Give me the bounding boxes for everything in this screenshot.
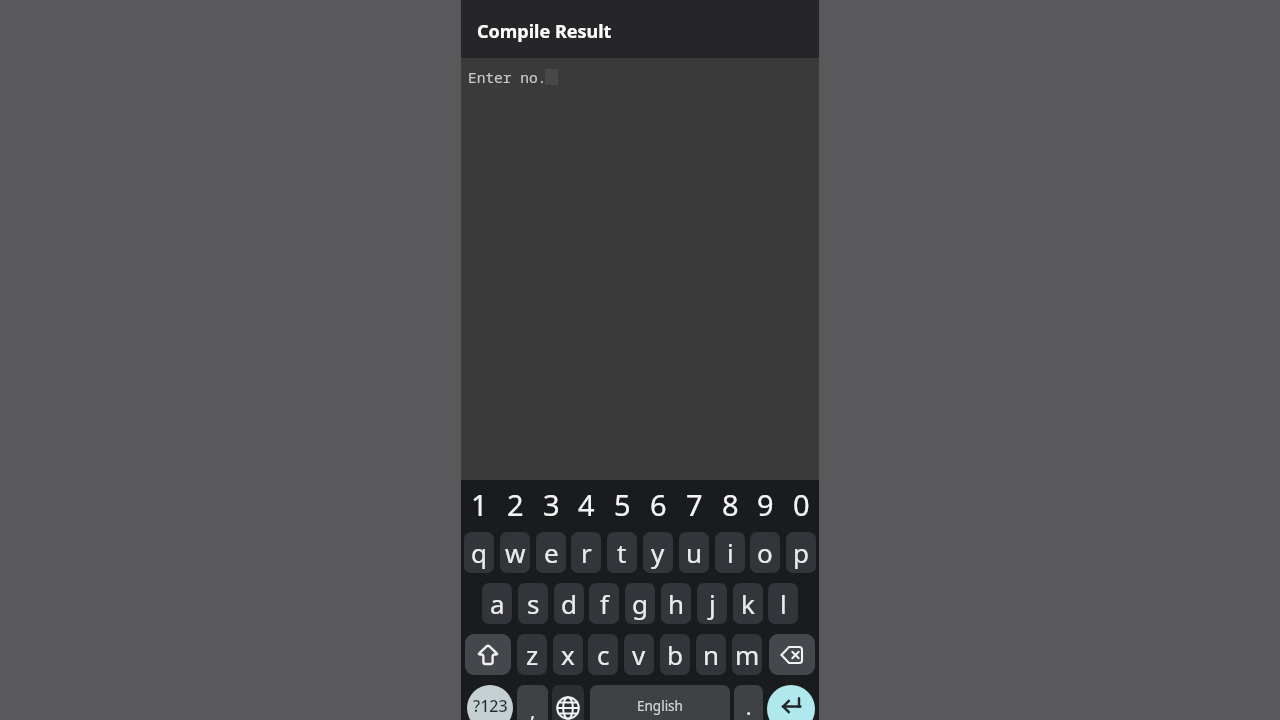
button[interactable]: f [589,583,619,624]
staticText: g [632,586,648,621]
button[interactable]: s [518,583,548,624]
button[interactable]: p [786,532,816,573]
button[interactable]: g [625,583,655,624]
staticText: r [581,535,592,570]
button[interactable]: r [571,532,601,573]
staticText: q [471,535,487,570]
staticText: p [793,535,809,570]
staticText: i [727,535,734,570]
button[interactable]: i [715,532,745,573]
button[interactable]: 7 [676,479,712,529]
button[interactable]: Compile Result [461,0,819,58]
staticText: s [527,586,540,621]
staticText: m [735,637,760,672]
button[interactable]: 3 [533,479,569,529]
button[interactable]: o [750,532,780,573]
button[interactable]: 6 [640,479,676,529]
button[interactable]: 8 [712,479,748,529]
staticText: 5 [614,485,631,524]
staticText: h [668,586,685,621]
button[interactable]: q [464,532,494,573]
button[interactable]: n [696,634,726,675]
staticText: 6 [650,485,667,524]
button[interactable]: 1 [461,479,497,529]
button[interactable]: ?123 [467,685,513,720]
button[interactable]: 2 [497,479,533,529]
button[interactable]: b [660,634,690,675]
button[interactable]: y [643,532,673,573]
staticText: t [617,535,627,570]
button[interactable]: l [768,583,798,624]
button[interactable]: t [607,532,637,573]
button[interactable]: j [697,583,727,624]
button[interactable] [552,685,584,720]
staticText: 3 [543,485,560,524]
button[interactable]: m [732,634,762,675]
staticText: n [703,637,720,672]
staticText: ?123 [473,695,508,717]
button[interactable]: x [553,634,583,675]
button[interactable]: u [679,532,709,573]
staticText: d [561,586,577,621]
button[interactable]: c [588,634,618,675]
button[interactable]: , [517,685,548,720]
staticText: English [637,697,683,715]
staticText: e [544,535,559,570]
staticText: u [686,535,703,570]
button[interactable] [769,634,815,675]
button[interactable]: 4 [568,479,604,529]
staticText: 8 [722,485,739,524]
button[interactable]: English [590,685,730,720]
button[interactable]: w [500,532,530,573]
staticText: w [505,535,526,570]
button[interactable]: 9 [747,479,783,529]
staticText: z [526,637,539,672]
staticText: 9 [757,485,774,524]
staticText: c [597,637,610,672]
staticText: b [667,637,683,672]
staticText: a [490,586,505,621]
staticText: v [632,637,646,672]
staticText: f [600,586,609,621]
staticText: x [561,637,575,672]
button[interactable]: k [733,583,763,624]
staticText: 2 [507,485,524,524]
button[interactable]: . [734,685,763,720]
button[interactable]: h [661,583,691,624]
staticText: 1 [471,485,488,524]
staticText: 0 [793,485,810,524]
button[interactable]: 5 [604,479,640,529]
staticText: o [757,535,773,570]
button[interactable] [465,634,511,675]
staticText: Enter no. [468,67,547,87]
staticText: 7 [686,485,703,524]
button[interactable]: e [536,532,566,573]
button[interactable] [767,685,815,720]
staticText: l [780,586,787,621]
button[interactable]: z [517,634,547,675]
staticText: . [746,694,752,720]
staticText: 4 [578,485,595,524]
button[interactable]: 0 [783,479,819,529]
staticText: y [651,535,665,570]
staticText: j [709,586,716,621]
button[interactable]: v [624,634,654,675]
button[interactable]: d [554,583,584,624]
button[interactable]: a [482,583,512,624]
staticText: , [530,697,536,720]
staticText: Compile Result [477,19,612,44]
staticText: k [741,586,755,621]
